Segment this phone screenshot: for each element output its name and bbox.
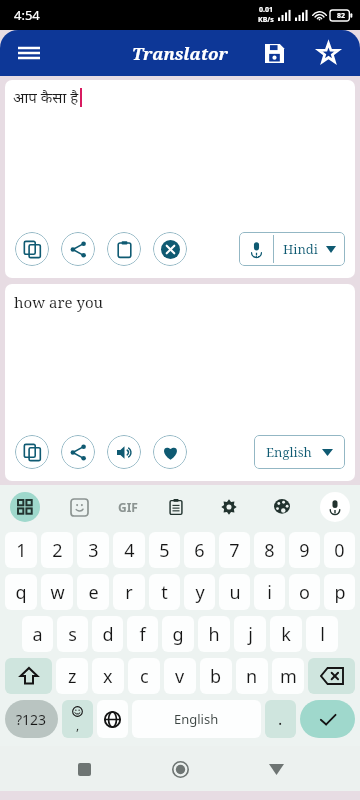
button[interactable]: a <box>22 616 53 652</box>
button[interactable]: Back <box>256 749 296 789</box>
staticText: English <box>174 710 219 728</box>
staticText: v <box>175 664 185 689</box>
staticText: k <box>281 622 291 647</box>
button[interactable]: Backspace <box>308 658 355 694</box>
button[interactable]: m <box>272 658 304 694</box>
staticText: j <box>248 622 253 647</box>
button[interactable]: English <box>254 435 345 469</box>
button[interactable]: 1 <box>5 532 37 568</box>
button[interactable]: 7 <box>219 532 250 568</box>
button[interactable]: u <box>219 574 250 610</box>
button[interactable]: r <box>113 574 145 610</box>
button[interactable]: 5 <box>149 532 180 568</box>
button[interactable]: y <box>184 574 215 610</box>
button[interactable]: 9 <box>289 532 320 568</box>
button[interactable]: Settings <box>214 492 244 522</box>
button[interactable]: f <box>127 616 158 652</box>
button[interactable]: k <box>270 616 302 652</box>
button[interactable]: w <box>41 574 73 610</box>
button[interactable]: Copy <box>15 232 49 266</box>
button[interactable]: b <box>200 658 232 694</box>
staticText: 82 <box>337 11 346 21</box>
staticText: f <box>139 622 146 647</box>
button[interactable]: v <box>164 658 196 694</box>
button[interactable]: Voice typing <box>320 492 350 522</box>
button[interactable]: Share <box>61 435 95 469</box>
button[interactable]: z <box>56 658 88 694</box>
staticText: 9 <box>299 538 310 563</box>
button[interactable]: 4 <box>113 532 145 568</box>
button[interactable]: d <box>92 616 123 652</box>
button[interactable]: 3 <box>77 532 109 568</box>
staticText: i <box>267 580 272 605</box>
staticText: a <box>32 622 43 647</box>
button[interactable]: Speak <box>107 435 141 469</box>
staticText: y <box>195 580 205 605</box>
button[interactable]: l <box>306 616 338 652</box>
button[interactable]: ?123 <box>5 700 58 738</box>
staticText: n <box>246 664 258 689</box>
staticText: 4 <box>124 538 135 563</box>
button[interactable]: Stickers <box>64 492 94 522</box>
staticText: 1 <box>16 538 27 563</box>
button[interactable]: 8 <box>254 532 285 568</box>
button[interactable]: Favorites <box>310 35 346 71</box>
staticText: 8 <box>264 538 275 563</box>
button[interactable]: Paste <box>107 232 141 266</box>
staticText: h <box>208 622 220 647</box>
button[interactable]: Themes <box>267 492 297 522</box>
button[interactable]: Share <box>61 232 95 266</box>
button[interactable]: Enter <box>300 700 355 738</box>
button[interactable]: h <box>198 616 230 652</box>
button[interactable]: Save <box>256 35 292 71</box>
button[interactable]: t <box>149 574 180 610</box>
button[interactable]: . <box>265 700 296 738</box>
staticText: w <box>50 580 65 605</box>
button[interactable]: Copy <box>15 435 49 469</box>
button[interactable]: o <box>289 574 320 610</box>
button[interactable]: x <box>92 658 124 694</box>
staticText: 7 <box>229 538 240 563</box>
staticText: 6 <box>194 538 205 563</box>
button[interactable]: Recents <box>64 749 104 789</box>
staticText: 5 <box>159 538 170 563</box>
staticText: . <box>278 708 283 730</box>
button[interactable]: Shift <box>5 658 52 694</box>
button[interactable]: n <box>236 658 268 694</box>
staticText: ?123 <box>16 710 47 729</box>
button[interactable]: English <box>132 700 261 738</box>
staticText: GIF <box>118 499 138 515</box>
staticText: p <box>334 580 346 605</box>
button[interactable]: c <box>128 658 160 694</box>
button[interactable]: Favorite <box>153 435 187 469</box>
button[interactable]: p <box>324 574 355 610</box>
button[interactable]: Home <box>160 749 200 789</box>
button[interactable]: j <box>234 616 266 652</box>
button[interactable]: Clipboard <box>161 492 191 522</box>
button[interactable]: 2 <box>41 532 73 568</box>
staticText: आप कैसा है <box>13 87 79 107</box>
staticText: how are you <box>14 292 104 312</box>
button[interactable]: e <box>77 574 109 610</box>
button[interactable]: GIF <box>118 492 138 522</box>
button[interactable]: Menu <box>10 34 48 72</box>
button[interactable]: Clear <box>153 232 187 266</box>
staticText: o <box>299 580 310 605</box>
button[interactable]: Apps <box>10 492 40 522</box>
button[interactable]: Voice input <box>239 232 345 266</box>
staticText: Translator <box>132 42 228 65</box>
button[interactable]: Change language <box>97 700 128 738</box>
button[interactable]: i <box>254 574 285 610</box>
button[interactable]: 0 <box>324 532 355 568</box>
staticText: m <box>280 664 297 689</box>
staticText: q <box>15 580 27 605</box>
staticText: 4:54 <box>14 6 40 24</box>
button[interactable]: 6 <box>184 532 215 568</box>
button[interactable]: Emoji and comma <box>62 700 93 738</box>
button[interactable]: g <box>162 616 194 652</box>
button[interactable]: s <box>57 616 88 652</box>
staticText: r <box>125 580 133 605</box>
button[interactable]: q <box>5 574 37 610</box>
staticText: s <box>68 622 77 647</box>
staticText: t <box>161 580 168 605</box>
